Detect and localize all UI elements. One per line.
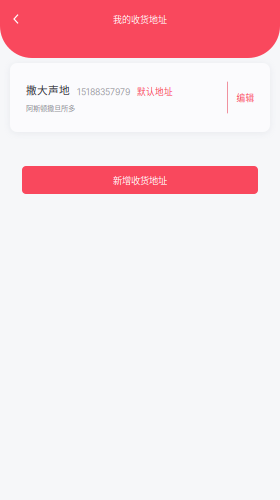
staticText: 15188357979 bbox=[77, 87, 130, 97]
staticText: 新增收货地址 bbox=[113, 173, 167, 187]
staticText: 阿斯顿撒旦所多 bbox=[26, 102, 75, 113]
staticText: 我的收货地址 bbox=[113, 12, 167, 25]
button[interactable]: Back bbox=[2, 4, 30, 34]
button[interactable]: 编辑 bbox=[228, 79, 263, 115]
staticText: 撒大声地 bbox=[26, 82, 70, 97]
staticText: 编辑 bbox=[236, 91, 254, 104]
button[interactable]: 新增收货地址 bbox=[22, 166, 258, 194]
staticText: 默认地址 bbox=[137, 85, 173, 97]
